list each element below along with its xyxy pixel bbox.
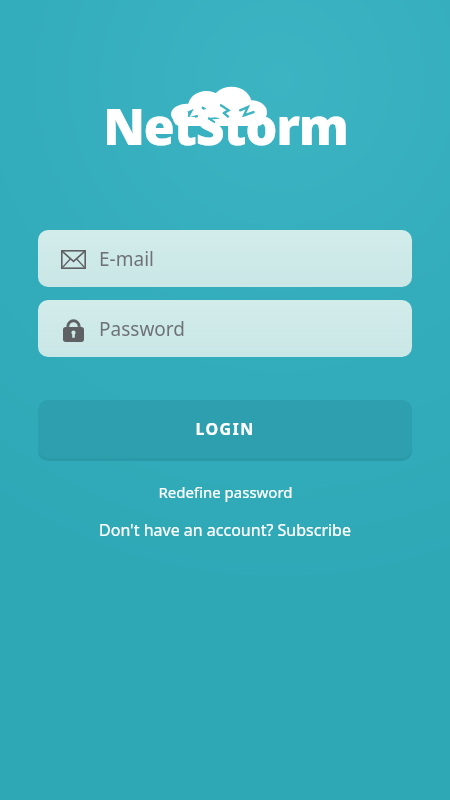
button[interactable]: Redefine password	[148, 478, 303, 506]
staticText: Password	[99, 316, 185, 342]
button[interactable]: E-mail	[38, 230, 412, 287]
staticText: Redefine password	[158, 482, 293, 502]
staticText: NetStorm	[103, 92, 348, 160]
staticText: Don't have an account? Subscribe	[99, 519, 351, 541]
staticText: LOGIN	[195, 418, 255, 440]
button[interactable]: Don't have an account? Subscribe	[89, 515, 361, 545]
button[interactable]: Password	[38, 300, 412, 357]
staticText: E-mail	[99, 246, 154, 272]
button[interactable]: LOGIN	[38, 400, 412, 458]
